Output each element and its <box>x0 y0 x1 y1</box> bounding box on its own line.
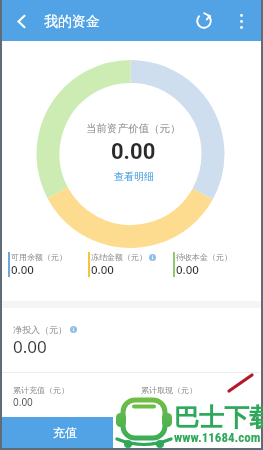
staticText: 净投入（元） <box>13 324 67 335</box>
staticText: 提现 <box>183 425 207 440</box>
staticText: 我的资金 <box>44 13 100 31</box>
button[interactable]: Refresh <box>188 5 220 37</box>
staticText: 0.00 <box>111 139 156 165</box>
staticText: 0.00 <box>13 395 33 409</box>
staticText: 当前资产价值（元） <box>86 122 181 135</box>
button[interactable]: 可用余额（元） <box>8 252 88 278</box>
button[interactable]: 冻结金额（元） <box>88 252 173 278</box>
staticText: 0.00 <box>141 395 161 409</box>
button[interactable]: 充值 <box>2 417 128 448</box>
staticText: 累计取现（元） <box>141 385 197 395</box>
staticText: 累计充值（元） <box>13 385 69 395</box>
staticText: 充值 <box>53 425 77 440</box>
staticText: 冻结金额（元） <box>91 252 147 262</box>
staticText: 0.00 <box>91 262 114 278</box>
staticText: 巴士下载 <box>174 402 263 433</box>
staticText: 0.00 <box>11 262 34 278</box>
staticText: www.11684.com <box>174 430 261 445</box>
button[interactable]: 提现 <box>128 417 261 448</box>
button[interactable]: 待收本金（元） <box>173 252 258 278</box>
button[interactable]: More options <box>226 6 256 36</box>
staticText: 待收本金（元） <box>176 252 232 262</box>
button[interactable]: 查看明细 <box>114 170 154 183</box>
staticText: 0.00 <box>176 262 199 278</box>
button[interactable]: Back <box>4 4 38 38</box>
staticText: 可用余额（元） <box>11 252 67 262</box>
staticText: 0.00 <box>13 335 47 358</box>
